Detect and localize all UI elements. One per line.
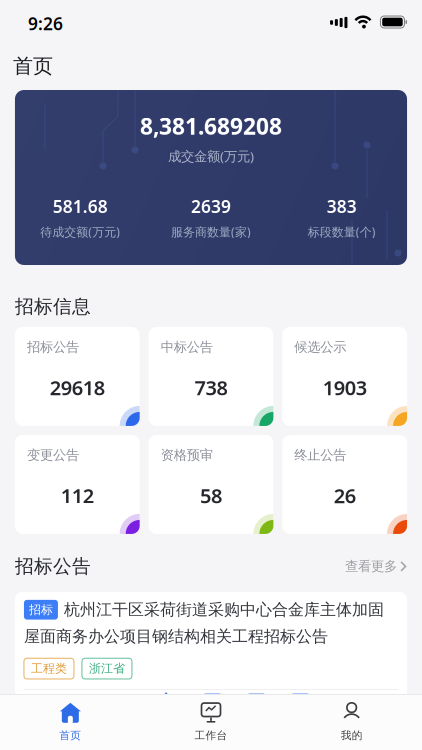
button[interactable]: 首页 <box>0 701 141 742</box>
staticText: 112 <box>61 482 94 509</box>
staticText: 资格预审 <box>161 447 213 463</box>
staticText: 29618 <box>50 374 105 401</box>
staticText: 581.68 <box>53 195 108 218</box>
staticText: 变更公告 <box>27 447 79 463</box>
staticText: 738 <box>194 374 227 401</box>
button[interactable]: 终止公告 <box>282 435 407 534</box>
button[interactable]: 招标公告 <box>15 327 140 426</box>
staticText: 服务商数量(家) <box>171 224 251 240</box>
staticText: 中标公告 <box>161 339 213 355</box>
staticText: 候选公示 <box>294 339 346 355</box>
staticText: 383 <box>327 195 357 218</box>
button[interactable]: 变更公告 <box>15 435 140 534</box>
button[interactable]: 查看更多 <box>345 558 407 575</box>
button[interactable]: 资格预审 <box>149 435 273 534</box>
staticText: 招标信息 <box>15 295 91 318</box>
staticText: 标段数量(个) <box>308 224 376 240</box>
staticText: 2639 <box>191 195 231 218</box>
staticText: 待成交额(万元) <box>40 224 120 240</box>
staticText: 9:26 <box>28 12 63 35</box>
staticText: 招标公告 <box>27 339 79 355</box>
button[interactable]: 候选公示 <box>282 327 407 426</box>
staticText: 成交金额(万元) <box>168 147 254 165</box>
staticText: 招标公告 <box>15 555 91 578</box>
staticText: 招标 <box>29 602 53 617</box>
button[interactable]: 招标 <box>15 592 407 699</box>
button[interactable]: 我的 <box>281 701 422 742</box>
staticText: 8,381.689208 <box>140 111 282 141</box>
staticText: 1903 <box>323 374 367 401</box>
staticText: 首页 <box>13 54 53 78</box>
staticText: 杭州江干区采荷街道采购中心合金库主体加固 <box>64 600 384 620</box>
staticText: 查看更多 <box>345 558 397 575</box>
staticText: 工程类 <box>31 661 67 676</box>
staticText: 终止公告 <box>294 447 346 463</box>
button[interactable]: 8,381.689208 <box>15 90 407 265</box>
staticText: 工作台 <box>194 729 227 742</box>
staticText: 浙江省 <box>89 661 125 676</box>
staticText: 58 <box>200 482 222 509</box>
staticText: 26 <box>334 482 356 509</box>
button[interactable]: 工作台 <box>141 701 281 742</box>
staticText: 首页 <box>59 729 81 742</box>
staticText: 屋面商务办公项目钢结构相关工程招标公告 <box>24 627 328 646</box>
button[interactable]: 中标公告 <box>149 327 273 426</box>
staticText: 我的 <box>341 729 363 742</box>
